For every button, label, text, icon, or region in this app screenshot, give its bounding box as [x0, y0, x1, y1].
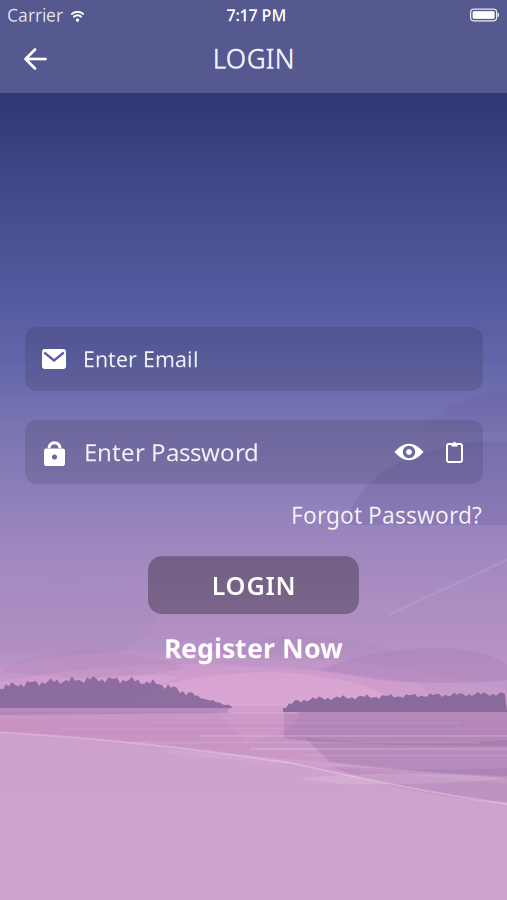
button[interactable]: Enter Password — [25, 420, 394, 484]
staticText: LOGIN — [212, 41, 294, 76]
staticText: Enter Email — [83, 345, 199, 373]
button[interactable]: Register Now — [164, 630, 343, 665]
button[interactable]: Paste — [426, 420, 483, 484]
staticText: 7:17 PM — [226, 4, 286, 26]
staticText: Carrier — [7, 3, 63, 26]
button[interactable]: Back — [0, 30, 48, 93]
staticText: Enter Password — [84, 436, 259, 468]
staticText: LOGIN — [211, 568, 295, 602]
staticText: Forgot Password? — [291, 500, 482, 530]
button[interactable]: Enter Email — [25, 327, 483, 391]
button[interactable]: Show Password — [394, 420, 426, 484]
staticText: Register Now — [164, 630, 343, 665]
button[interactable]: Forgot Password? — [291, 500, 482, 530]
button[interactable]: LOGIN — [148, 556, 359, 614]
